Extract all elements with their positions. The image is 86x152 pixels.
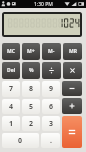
button[interactable]: 9: [42, 81, 60, 97]
button[interactable]: 3: [42, 116, 60, 131]
button[interactable]: M+: [22, 43, 40, 60]
staticText: 2: [29, 119, 34, 129]
button[interactable]: 1: [2, 116, 20, 131]
staticText: M+: [27, 48, 35, 55]
staticText: 7: [9, 84, 14, 94]
staticText: %: [29, 67, 34, 74]
staticText: 9: [49, 84, 54, 94]
button[interactable]: 8: [22, 81, 40, 97]
staticText: 1: [9, 119, 14, 129]
staticText: 6: [49, 102, 54, 112]
button[interactable]: MR: [63, 43, 82, 60]
button[interactable]: %: [22, 62, 40, 79]
button[interactable]: 7: [2, 81, 20, 97]
button[interactable]: 4: [2, 99, 20, 114]
button[interactable]: Divide: [42, 62, 61, 79]
staticText: 5: [29, 102, 34, 112]
button[interactable]: 0: [2, 133, 39, 148]
button[interactable]: 6: [42, 99, 60, 114]
button[interactable]: M-: [42, 43, 61, 60]
button[interactable]: Multiply: [63, 62, 82, 79]
button[interactable]: Minus: [62, 81, 82, 96]
staticText: Del: [7, 67, 16, 74]
staticText: 1:30 PM: [34, 1, 53, 8]
staticText: 4: [9, 102, 14, 112]
staticText: 8: [29, 84, 34, 94]
button[interactable]: .: [41, 133, 60, 148]
staticText: 0: [18, 136, 23, 146]
button[interactable]: Plus: [62, 98, 82, 114]
staticText: MC: [7, 48, 15, 55]
button[interactable]: MC: [2, 43, 20, 60]
button[interactable]: 2: [22, 116, 40, 131]
button[interactable]: Equals: [62, 116, 82, 148]
staticText: M-: [48, 48, 55, 55]
button[interactable]: Del: [2, 62, 20, 79]
staticText: MR: [69, 48, 77, 55]
button[interactable]: 5: [22, 99, 40, 114]
staticText: 3: [49, 119, 54, 129]
staticText: .: [50, 136, 52, 146]
